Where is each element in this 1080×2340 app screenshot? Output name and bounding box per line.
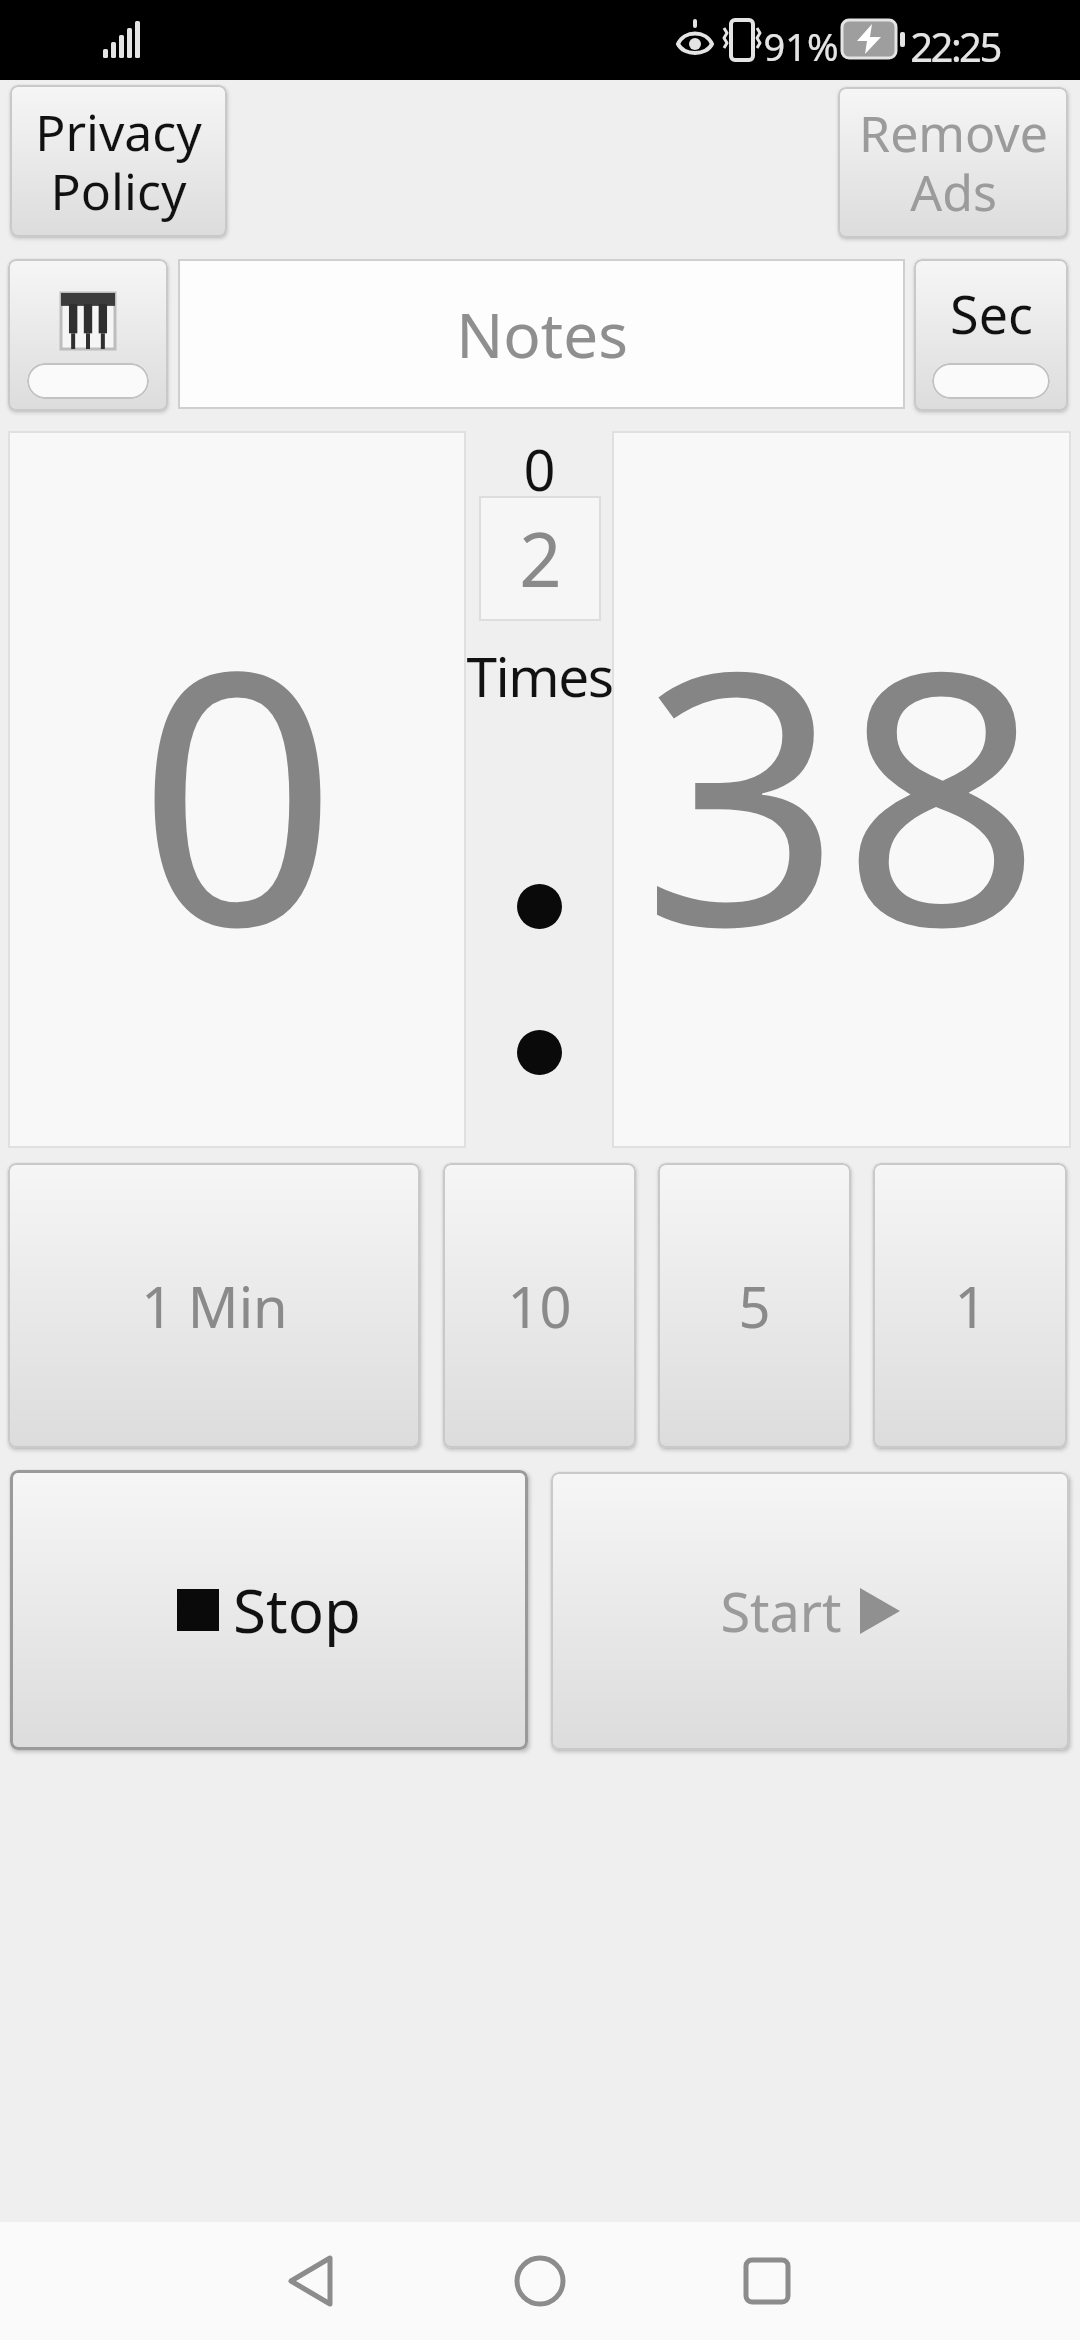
button[interactable]: Remove Ads <box>838 87 1068 238</box>
staticText: Remove Ads <box>859 99 1048 226</box>
staticText: Privacy Policy <box>35 98 202 225</box>
staticText: 22:25 <box>910 19 1000 73</box>
staticText: Start <box>720 1574 842 1648</box>
button[interactable] <box>288 2256 334 2306</box>
staticText: 10 <box>507 1268 572 1344</box>
button[interactable]: 1 <box>873 1163 1067 1448</box>
staticText: 1 Min <box>141 1268 288 1344</box>
staticText: Sec <box>950 278 1033 349</box>
staticText: Notes <box>456 292 628 376</box>
button[interactable]: 5 <box>658 1163 851 1448</box>
button[interactable]: 2 <box>479 496 601 621</box>
staticText: Stop <box>233 1569 361 1651</box>
staticText: 5 <box>738 1268 771 1344</box>
staticText: Times <box>466 638 613 708</box>
staticText: 91% <box>763 20 839 72</box>
staticText: 38 <box>641 551 1042 1028</box>
staticText: 1 <box>954 1268 987 1344</box>
button[interactable]: Stop <box>10 1470 528 1750</box>
button[interactable]: Notes <box>178 259 905 409</box>
button[interactable]: 1 Min <box>8 1163 420 1448</box>
button[interactable] <box>8 259 168 411</box>
button[interactable]: Sec <box>914 259 1068 411</box>
button[interactable] <box>743 2257 791 2305</box>
button[interactable]: Start <box>551 1472 1069 1750</box>
button[interactable] <box>514 2255 566 2307</box>
staticText: 0 <box>523 431 556 501</box>
staticText: 0 <box>137 551 338 1028</box>
staticText: 2 <box>519 508 562 609</box>
button[interactable]: 10 <box>443 1163 636 1448</box>
button[interactable]: Privacy Policy <box>10 85 227 237</box>
